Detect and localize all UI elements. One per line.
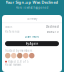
staticText: Rated 4.8 of 5: [8, 60, 29, 63]
staticText: Reference: [5, 30, 20, 33]
button[interactable]: Try Again: [5, 41, 59, 46]
staticText: Try Again: [25, 42, 38, 45]
staticText: Learn more: [24, 35, 39, 38]
staticText: Declined: [46, 25, 59, 28]
staticText: Read reviews: [5, 63, 21, 66]
staticText: Summary: [27, 17, 37, 20]
staticText: #48213: [47, 30, 59, 33]
staticText: Trusted by members: [5, 49, 32, 52]
staticText: Here is what happened: [15, 6, 48, 9]
staticText: Status: [5, 25, 12, 28]
button[interactable]: Learn more: [2, 34, 62, 39]
staticText: Your Sign-up Was Declined: [5, 0, 58, 5]
